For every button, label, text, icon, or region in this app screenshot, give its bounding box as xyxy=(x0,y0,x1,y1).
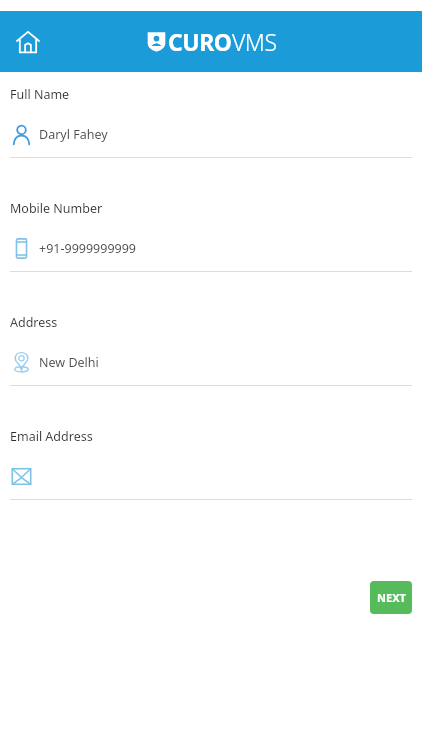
button[interactable]: Email Address xyxy=(0,428,422,542)
staticText: CURO xyxy=(168,26,232,57)
staticText: New Delhi xyxy=(39,354,99,371)
staticText: Email Address xyxy=(10,428,93,445)
staticText: VMS xyxy=(232,26,277,57)
button[interactable]: Address xyxy=(0,314,422,428)
button[interactable]: Home xyxy=(6,20,50,64)
staticText: Daryl Fahey xyxy=(39,126,108,143)
staticText: Mobile Number xyxy=(10,200,103,217)
button[interactable]: NEXT xyxy=(370,581,412,614)
button[interactable]: Mobile Number xyxy=(0,200,422,314)
staticText: Full Name xyxy=(10,86,70,103)
button[interactable]: Full Name xyxy=(0,86,422,200)
staticText: NEXT xyxy=(377,590,406,605)
staticText: Address xyxy=(10,314,58,331)
staticText: +91-9999999999 xyxy=(39,240,136,257)
